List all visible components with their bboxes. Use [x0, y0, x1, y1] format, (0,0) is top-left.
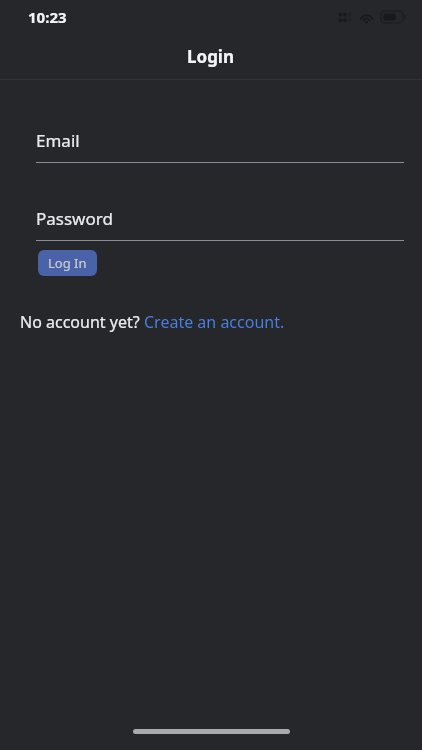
staticText: Log In: [48, 254, 87, 272]
staticText: Create an account.: [144, 311, 285, 333]
staticText: No account yet?: [20, 311, 144, 333]
button[interactable]: Create an account.: [144, 311, 285, 333]
staticText: Password: [36, 207, 113, 230]
button[interactable]: Log In: [38, 250, 97, 276]
button[interactable]: Email: [0, 129, 422, 163]
staticText: Login: [187, 45, 235, 68]
staticText: 10:23: [28, 7, 67, 27]
button[interactable]: Password: [0, 207, 422, 241]
staticText: Email: [36, 129, 80, 152]
